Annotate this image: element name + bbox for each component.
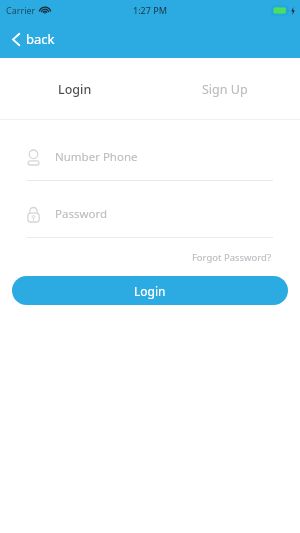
staticText: 1:27 PM xyxy=(133,4,167,16)
other: Back xyxy=(12,33,20,46)
staticText: Password xyxy=(55,206,108,222)
button[interactable]: Password xyxy=(27,199,273,238)
button[interactable]: Forgot Password? xyxy=(189,248,273,267)
button[interactable]: Login xyxy=(12,276,288,305)
staticText: Sign Up xyxy=(202,81,248,98)
staticText: Number Phone xyxy=(55,149,138,165)
staticText: Login xyxy=(134,283,166,299)
button[interactable]: Login xyxy=(0,59,150,119)
button[interactable]: Back xyxy=(8,26,59,52)
staticText: Forgot Password? xyxy=(191,251,271,264)
staticText: Carrier xyxy=(6,4,36,16)
button[interactable]: Number Phone xyxy=(27,142,273,181)
button[interactable]: Sign Up xyxy=(150,59,300,119)
staticText: back xyxy=(26,30,55,48)
staticText: Login xyxy=(58,81,92,98)
